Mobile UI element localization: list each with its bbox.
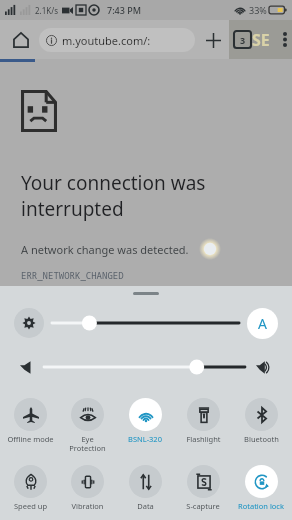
staticText: m.youtube.com/: xyxy=(62,33,151,48)
button[interactable]: Tabs: 3 xyxy=(234,31,251,48)
staticText: S-capture xyxy=(186,501,220,511)
staticText: Speed up xyxy=(14,501,47,511)
staticText: 3 xyxy=(240,34,246,46)
staticText: Eye Protection xyxy=(69,434,106,453)
button[interactable]: m.youtube.com/: xyxy=(39,28,195,52)
button[interactable]: Home xyxy=(6,25,36,55)
button[interactable]: Data xyxy=(116,463,174,513)
staticText: Your connection was interrupted xyxy=(21,170,206,221)
staticText: Bluetooth xyxy=(244,434,279,444)
staticText: BSNL-320 xyxy=(128,434,162,444)
button[interactable]: New tab xyxy=(197,24,229,56)
staticText: Offline mode xyxy=(7,434,54,444)
staticText: A network change was detected. xyxy=(21,242,189,257)
staticText: A xyxy=(258,314,267,333)
staticText: 2.1K/s xyxy=(35,5,59,16)
staticText: 33% xyxy=(249,4,267,16)
button[interactable]: Vibration xyxy=(59,463,116,513)
button[interactable]: Offline mode xyxy=(2,396,59,446)
button[interactable]: Auto brightness xyxy=(247,308,278,339)
staticText: 7:43 PM xyxy=(107,4,141,16)
button[interactable]: Display settings xyxy=(14,308,44,338)
staticText: SE xyxy=(252,29,270,51)
button[interactable] xyxy=(44,355,245,379)
button[interactable]: Speed up xyxy=(2,463,59,513)
button[interactable]: Bluetooth xyxy=(232,396,290,446)
staticText: ERR_NETWORK_CHANGED xyxy=(21,269,124,281)
button[interactable]: More options xyxy=(278,20,292,59)
staticText: Rotation lock xyxy=(238,501,284,511)
staticText: Vibration xyxy=(71,501,104,511)
button[interactable]: Eye Protection xyxy=(59,396,116,455)
button[interactable]: S-capture xyxy=(174,463,232,513)
button[interactable]: BSNL-320 xyxy=(116,396,174,446)
button[interactable]: Rotation lock xyxy=(232,463,290,513)
staticText: Data xyxy=(137,501,154,511)
button[interactable] xyxy=(52,310,239,336)
button[interactable]: Flashlight xyxy=(174,396,232,446)
staticText: Flashlight xyxy=(186,434,221,444)
